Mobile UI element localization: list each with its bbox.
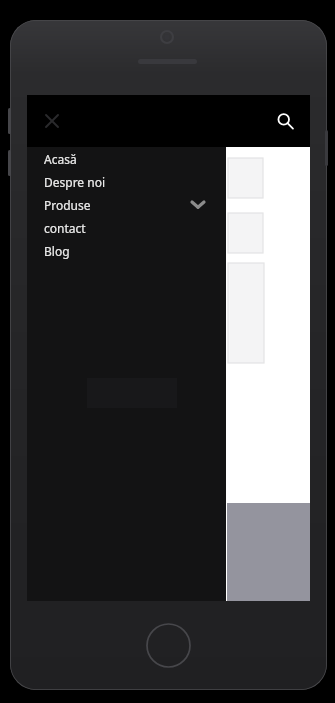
button[interactable]: Search	[272, 108, 298, 134]
staticText: Produse	[44, 197, 91, 213]
staticText: contact	[44, 220, 86, 236]
button[interactable]: Close menu	[39, 108, 65, 134]
staticText: Blog	[44, 243, 70, 259]
button[interactable]: Acasă	[27, 147, 226, 170]
staticText: Despre noi	[44, 174, 106, 190]
other: Home	[146, 623, 191, 668]
button[interactable]: Despre noi	[27, 170, 226, 193]
button[interactable]	[228, 213, 263, 253]
button[interactable]: Produse	[27, 193, 226, 216]
button[interactable]: contact	[27, 216, 226, 239]
staticText: Acasă	[44, 151, 77, 167]
button[interactable]: Blog	[27, 239, 226, 262]
button[interactable]	[228, 158, 263, 198]
